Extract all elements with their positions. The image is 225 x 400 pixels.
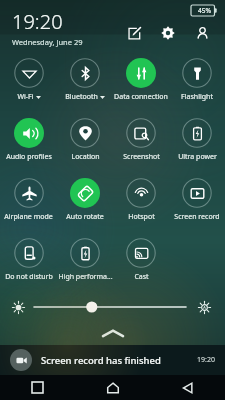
button[interactable]: Audio profiles (0, 112, 57, 172)
staticText: Screenshot (123, 152, 160, 162)
staticText: 19:20 (12, 8, 63, 35)
button[interactable]: Bluetooth (57, 52, 113, 112)
button[interactable]: Recent apps (0, 375, 75, 400)
button[interactable]: Screen record (169, 172, 225, 232)
staticText: Data connection (114, 92, 168, 102)
button[interactable]: Data connection (113, 52, 169, 112)
button[interactable]: Collapse quick settings (0, 322, 225, 344)
staticText: Auto rotate (66, 212, 104, 222)
staticText: Ultra power (178, 152, 217, 162)
staticText: Location (71, 152, 100, 162)
staticText: Bluetooth (65, 92, 98, 102)
staticText: High performa... (58, 272, 113, 282)
staticText: Do not disturb (5, 272, 53, 282)
staticText: Screen record has finished (41, 354, 197, 367)
button[interactable]: Hotspot (113, 172, 169, 232)
button[interactable]: Airplane mode (0, 172, 57, 232)
staticText: Audio profiles (6, 152, 52, 162)
button[interactable]: Auto brightness (195, 298, 213, 316)
button[interactable]: User (189, 20, 215, 46)
button[interactable]: Edit tiles (121, 20, 147, 46)
staticText: 45% (198, 6, 211, 15)
button[interactable]: Home (75, 375, 150, 400)
staticText: Wi-Fi (17, 92, 34, 102)
staticText: Hotspot (128, 212, 155, 222)
staticText: 19:20 (197, 355, 215, 365)
button[interactable]: Wi-Fi (0, 52, 57, 112)
button[interactable]: Screen record has finished (0, 345, 225, 375)
button[interactable]: Auto rotate (57, 172, 113, 232)
button[interactable]: Brightness slider (34, 296, 186, 318)
staticText: Flashlight (181, 92, 213, 102)
staticText: Airplane mode (4, 212, 53, 222)
button[interactable]: Flashlight (169, 52, 225, 112)
staticText: Screen record (174, 212, 220, 222)
staticText: Wednesday, June 29 (12, 37, 83, 47)
staticText: Cast (134, 272, 149, 282)
button[interactable]: Screenshot (113, 112, 169, 172)
button[interactable]: Location (57, 112, 113, 172)
button[interactable]: Cast (113, 232, 169, 292)
button[interactable]: Back (150, 375, 225, 400)
button[interactable]: Do not disturb (0, 232, 57, 292)
button[interactable]: High performa... (57, 232, 113, 292)
button[interactable]: Settings (155, 20, 181, 46)
button[interactable]: Ultra power (169, 112, 225, 172)
